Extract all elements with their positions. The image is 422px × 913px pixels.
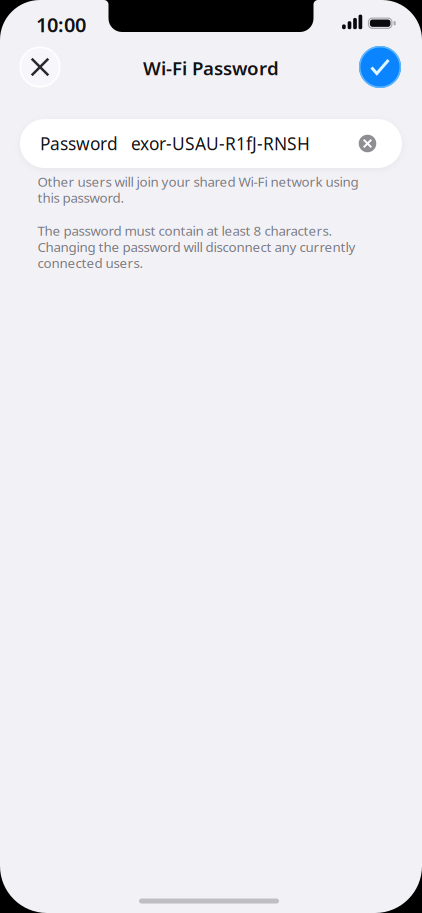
staticText: The password must contain at least 8 cha…: [37, 222, 332, 239]
staticText: Changing the password will disconnect an…: [37, 238, 355, 256]
button[interactable]: Password: [20, 119, 402, 168]
staticText: this password.: [37, 189, 124, 206]
button[interactable]: Close: [19, 46, 60, 87]
button[interactable]: Confirm: [359, 46, 401, 88]
staticText: 10:00: [36, 11, 86, 38]
staticText: Password: [40, 132, 118, 155]
staticText: exor-USAU-R1fJ-RNSH: [131, 132, 310, 155]
staticText: connected users.: [37, 254, 143, 272]
staticText: Wi-Fi Password: [143, 56, 279, 80]
staticText: Other users will join your shared Wi-Fi …: [37, 173, 358, 190]
button[interactable]: Clear text: [359, 135, 376, 152]
